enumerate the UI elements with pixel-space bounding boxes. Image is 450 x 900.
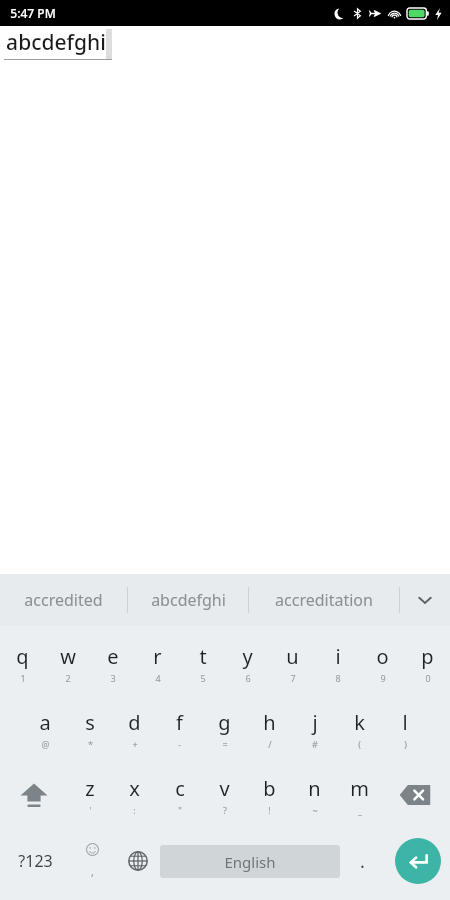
staticText: ?123	[18, 850, 53, 872]
button[interactable]: Enter	[395, 838, 441, 884]
staticText: t	[199, 643, 207, 670]
button[interactable]: r	[135, 630, 180, 696]
button[interactable]: abcdefghi	[0, 26, 450, 66]
staticText: 2	[65, 672, 71, 684]
button[interactable]: i	[315, 630, 360, 696]
staticText: m	[350, 775, 369, 802]
button[interactable]: .	[340, 828, 385, 894]
staticText: k	[354, 709, 365, 736]
staticText: v	[219, 775, 230, 802]
button[interactable]: s	[67, 696, 112, 762]
staticText: r	[153, 643, 162, 670]
staticText: "	[178, 804, 182, 816]
button[interactable]: English	[160, 845, 340, 878]
button[interactable]: accredited	[0, 574, 127, 626]
button[interactable]: j	[292, 696, 337, 762]
staticText: _	[358, 804, 362, 816]
staticText: q	[16, 643, 29, 670]
button[interactable]: accreditation	[249, 574, 399, 626]
staticText: #	[312, 738, 318, 750]
button[interactable]: a	[22, 696, 67, 762]
staticText: 0	[425, 672, 431, 684]
button[interactable]: v	[202, 762, 247, 828]
button[interactable]: l	[382, 696, 427, 762]
staticText: +	[132, 738, 138, 750]
staticText: abcdefghi	[151, 589, 226, 611]
staticText: -	[178, 738, 181, 750]
staticText: *	[88, 738, 93, 750]
staticText: (	[358, 738, 361, 750]
staticText: 8	[335, 672, 341, 684]
button[interactable]: g	[202, 696, 247, 762]
button[interactable]: k	[337, 696, 382, 762]
button[interactable]: p	[405, 630, 450, 696]
staticText: 3	[110, 672, 116, 684]
staticText: abcdefghi	[6, 28, 106, 57]
staticText: !	[268, 804, 271, 816]
staticText: h	[263, 709, 276, 736]
button[interactable]: abcdefghi	[128, 574, 248, 626]
staticText: i	[335, 643, 341, 670]
button[interactable]: Shift	[0, 762, 67, 828]
staticText: o	[376, 643, 389, 670]
staticText: w	[60, 643, 76, 670]
staticText: ?	[223, 804, 227, 816]
staticText: 7	[290, 672, 296, 684]
staticText: /	[268, 738, 272, 750]
staticText: z	[85, 775, 95, 802]
staticText: ,	[91, 864, 94, 879]
button[interactable]: u	[270, 630, 315, 696]
button[interactable]: n	[292, 762, 337, 828]
staticText: p	[421, 643, 434, 670]
staticText: English	[224, 852, 276, 872]
staticText: s	[85, 709, 95, 736]
staticText: =	[222, 738, 228, 750]
button[interactable]: h	[247, 696, 292, 762]
button[interactable]: x	[112, 762, 157, 828]
staticText: d	[128, 709, 141, 736]
button[interactable]: Emoji	[70, 828, 115, 894]
button[interactable]: t	[180, 630, 225, 696]
button[interactable]: b	[247, 762, 292, 828]
button[interactable]: Backspace	[382, 762, 450, 828]
staticText: u	[286, 643, 299, 670]
button[interactable]: Change language	[115, 828, 160, 894]
staticText: 5:47 PM	[10, 5, 56, 21]
staticText: g	[218, 709, 231, 736]
staticText: 6	[245, 672, 251, 684]
button[interactable]: d	[112, 696, 157, 762]
staticText: )	[404, 738, 407, 750]
staticText: y	[242, 643, 253, 670]
button[interactable]: c	[157, 762, 202, 828]
staticText: :	[133, 804, 136, 816]
staticText: a	[39, 709, 51, 736]
staticText: accreditation	[275, 589, 373, 611]
button[interactable]: m	[337, 762, 382, 828]
staticText: c	[175, 775, 185, 802]
staticText: 4	[155, 672, 161, 684]
staticText: e	[107, 643, 119, 670]
staticText: .	[360, 849, 365, 874]
staticText: ~	[312, 804, 318, 816]
staticText: n	[308, 775, 321, 802]
staticText: l	[402, 709, 408, 736]
staticText: @	[41, 738, 50, 750]
staticText: f	[176, 709, 183, 736]
staticText: b	[263, 775, 276, 802]
button[interactable]: f	[157, 696, 202, 762]
staticText: 1	[20, 672, 26, 684]
button[interactable]: y	[225, 630, 270, 696]
staticText: x	[129, 775, 140, 802]
button[interactable]: q	[0, 630, 45, 696]
button[interactable]: z	[67, 762, 112, 828]
staticText: '	[89, 804, 92, 816]
button[interactable]: Expand suggestions	[400, 574, 450, 626]
staticText: 9	[380, 672, 386, 684]
staticText: 5	[200, 672, 206, 684]
staticText: accredited	[24, 589, 103, 611]
staticText: j	[312, 709, 318, 736]
button[interactable]: ?123	[0, 828, 70, 894]
button[interactable]: o	[360, 630, 405, 696]
button[interactable]: e	[90, 630, 135, 696]
button[interactable]: w	[45, 630, 90, 696]
